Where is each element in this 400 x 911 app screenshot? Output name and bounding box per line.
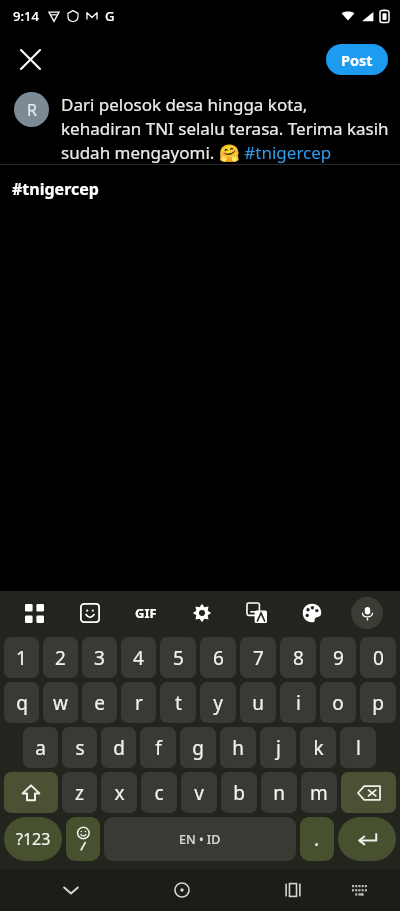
staticText: z [75, 780, 84, 806]
staticText: 1 [16, 645, 27, 671]
button[interactable]: Dari pelosok desa hingga kota, kehadiran… [61, 93, 390, 164]
button[interactable]: e [82, 682, 117, 723]
button[interactable]: d [101, 727, 136, 768]
staticText: n [273, 780, 285, 806]
button[interactable]: 7 [240, 637, 276, 678]
button[interactable]: n [261, 772, 297, 813]
button[interactable]: 9 [320, 637, 356, 678]
button[interactable]: Translate [229, 593, 284, 633]
staticText: 9:14 [13, 7, 39, 25]
button[interactable]: Profile [14, 92, 49, 127]
staticText: r [135, 690, 143, 716]
button[interactable]: f [140, 727, 176, 768]
button[interactable]: 0 [360, 637, 396, 678]
button[interactable]: 4 [121, 637, 156, 678]
button[interactable]: Enter [338, 817, 396, 861]
button[interactable]: . [300, 817, 334, 861]
staticText: l [356, 735, 361, 761]
button[interactable]: Shift [4, 772, 58, 813]
staticText: 7 [253, 645, 264, 671]
button[interactable]: l [340, 727, 376, 768]
button[interactable]: Close [8, 37, 52, 81]
button[interactable]: Apps [6, 593, 62, 633]
button[interactable]: 3 [82, 637, 117, 678]
button[interactable]: 2 [43, 637, 78, 678]
button[interactable]: j [260, 727, 296, 768]
button[interactable]: t [160, 682, 196, 723]
button[interactable]: ?123 [4, 817, 62, 861]
button[interactable]: x [101, 772, 137, 813]
staticText: w [53, 690, 68, 716]
button[interactable]: h [220, 727, 256, 768]
button[interactable]: 6 [200, 637, 236, 678]
staticText: d [113, 735, 125, 761]
button[interactable]: Voice input [351, 597, 383, 629]
staticText: GIF [135, 604, 157, 622]
staticText: 6 [213, 645, 224, 671]
button[interactable]: Back [49, 869, 93, 911]
button[interactable]: q [4, 682, 39, 723]
staticText: 3 [94, 645, 105, 671]
staticText: Post [341, 50, 373, 70]
button[interactable]: w [43, 682, 78, 723]
staticText: 5 [173, 645, 184, 671]
button[interactable]: o [320, 682, 356, 723]
button[interactable]: a [23, 727, 58, 768]
staticText: y [213, 690, 223, 716]
button[interactable]: b [221, 772, 257, 813]
button[interactable]: k [300, 727, 336, 768]
staticText: j [276, 735, 281, 761]
staticText: o [332, 690, 344, 716]
button[interactable]: Post [326, 44, 388, 75]
button[interactable]: 5 [160, 637, 196, 678]
staticText: 4 [133, 645, 144, 671]
staticText: 8 [293, 645, 304, 671]
staticText: 2 [55, 645, 66, 671]
staticText: b [233, 780, 245, 806]
button[interactable]: Backspace [341, 772, 396, 813]
staticText: Dari pelosok desa hingga kota, kehadiran… [61, 93, 390, 164]
button[interactable]: s [62, 727, 97, 768]
staticText: t [175, 690, 182, 716]
button[interactable]: Recents [271, 869, 315, 911]
staticText: q [16, 690, 28, 716]
staticText: x [114, 780, 125, 806]
button[interactable]: Home [160, 869, 204, 911]
button[interactable]: 1 [4, 637, 39, 678]
button[interactable]: g [180, 727, 216, 768]
button[interactable]: #tnigercep [0, 165, 400, 213]
staticText: 0 [373, 645, 384, 671]
button[interactable]: Switch keyboard [340, 870, 380, 910]
staticText: u [252, 690, 264, 716]
button[interactable]: y [200, 682, 236, 723]
staticText: p [372, 690, 384, 716]
button[interactable]: Stickers [62, 593, 118, 633]
button[interactable]: r [121, 682, 156, 723]
button[interactable]: m [301, 772, 337, 813]
staticText: e [94, 690, 105, 716]
staticText: R [27, 99, 37, 121]
button[interactable]: EN • ID [104, 817, 296, 861]
staticText: #tnigercep [12, 178, 99, 200]
staticText: EN • ID [179, 831, 221, 848]
staticText: g [192, 735, 204, 761]
staticText: k [313, 735, 324, 761]
button[interactable]: Settings [174, 593, 229, 633]
button[interactable]: v [181, 772, 217, 813]
staticText: m [310, 780, 328, 806]
button[interactable]: 8 [280, 637, 316, 678]
button[interactable]: c [141, 772, 177, 813]
button[interactable]: Themes [284, 593, 339, 633]
staticText: s [75, 735, 85, 761]
staticText: ?123 [16, 828, 51, 850]
staticText: 9 [333, 645, 344, 671]
button[interactable]: GIF [118, 593, 174, 633]
staticText: f [155, 735, 162, 761]
button[interactable]: p [360, 682, 396, 723]
button[interactable]: i [280, 682, 316, 723]
staticText: G [105, 7, 115, 25]
staticText: v [194, 780, 204, 806]
button[interactable]: Emoji [66, 817, 100, 861]
button[interactable]: u [240, 682, 276, 723]
button[interactable]: z [62, 772, 97, 813]
